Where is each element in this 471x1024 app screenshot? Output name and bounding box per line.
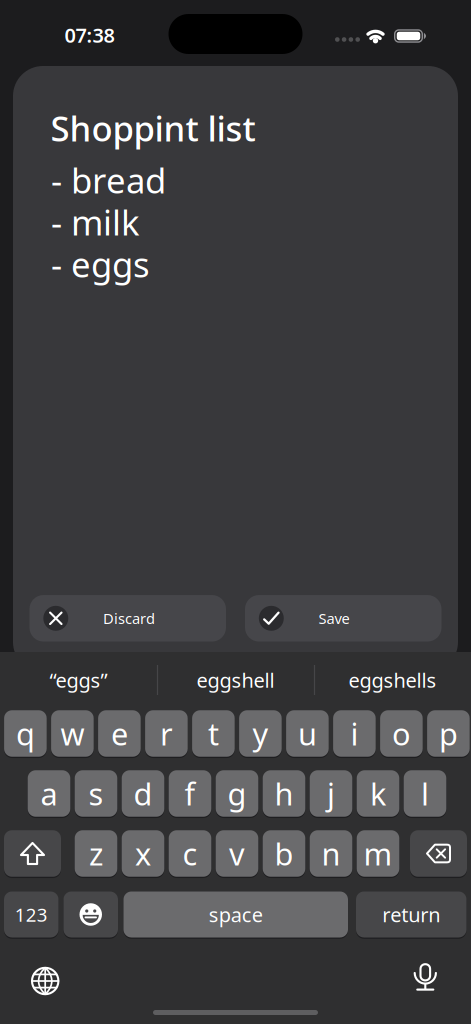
button[interactable]: u <box>286 710 329 757</box>
button[interactable]: return <box>356 891 466 937</box>
button[interactable]: i <box>333 710 376 757</box>
staticText: e <box>111 713 128 754</box>
staticText: b <box>274 833 293 874</box>
button[interactable]: g <box>216 770 258 817</box>
button[interactable]: w <box>51 710 94 757</box>
staticText: k <box>370 773 386 814</box>
button[interactable]: h <box>263 770 305 817</box>
staticText: m <box>363 833 392 874</box>
staticText: d <box>133 773 152 814</box>
staticText: c <box>182 833 197 874</box>
staticText: Shoppint list <box>50 105 255 151</box>
button[interactable]: Discard <box>29 595 226 641</box>
staticText: Save <box>318 609 349 628</box>
button[interactable]: q <box>4 710 47 757</box>
button[interactable]: v <box>216 830 258 877</box>
button[interactable]: eggshells <box>317 660 467 700</box>
button[interactable]: k <box>357 770 399 817</box>
staticText: n <box>321 833 340 874</box>
button[interactable]: space <box>123 891 348 937</box>
staticText: j <box>327 773 335 814</box>
button[interactable]: r <box>145 710 188 757</box>
button[interactable]: “eggs” <box>3 660 153 700</box>
staticText: r <box>160 713 173 754</box>
staticText: l <box>421 773 429 814</box>
staticText: s <box>88 773 103 814</box>
button[interactable]: Shift <box>4 830 61 877</box>
staticText: h <box>274 773 293 814</box>
staticText: z <box>89 833 103 874</box>
staticText: y <box>252 713 268 754</box>
button[interactable]: n <box>310 830 352 877</box>
button[interactable]: o <box>380 710 423 757</box>
staticText: space <box>209 901 263 928</box>
button[interactable]: Delete <box>410 830 467 877</box>
staticText: u <box>298 713 317 754</box>
staticText: w <box>60 713 84 754</box>
button[interactable]: b <box>263 830 305 877</box>
staticText: 07:38 <box>64 22 114 48</box>
button[interactable]: Save <box>245 595 441 641</box>
staticText: p <box>439 713 458 754</box>
button[interactable]: Emoji <box>63 891 118 937</box>
button[interactable]: f <box>169 770 211 817</box>
staticText: “eggs” <box>49 667 107 693</box>
staticText: v <box>229 833 245 874</box>
staticText: eggshell <box>196 667 274 693</box>
staticText: q <box>16 713 35 754</box>
button[interactable]: d <box>122 770 164 817</box>
button[interactable]: l <box>404 770 446 817</box>
button[interactable]: eggshell <box>160 660 310 700</box>
button[interactable]: y <box>239 710 282 757</box>
staticText: eggshells <box>348 667 436 693</box>
staticText: - bread <box>51 157 166 203</box>
staticText: return <box>382 901 440 928</box>
staticText: a <box>40 773 57 814</box>
button[interactable]: m <box>357 830 399 877</box>
button[interactable]: a <box>28 770 70 817</box>
button[interactable]: z <box>75 830 117 877</box>
staticText: - eggs <box>51 241 150 287</box>
staticText: f <box>184 773 195 814</box>
button[interactable]: Next keyboard <box>20 956 70 1006</box>
button[interactable]: s <box>75 770 117 817</box>
button[interactable]: t <box>192 710 235 757</box>
button[interactable]: Numbers <box>4 891 58 937</box>
button[interactable]: Dictation <box>400 954 450 1004</box>
staticText: - milk <box>51 199 140 245</box>
staticText: i <box>350 713 358 754</box>
button[interactable]: e <box>98 710 141 757</box>
staticText: t <box>208 713 219 754</box>
staticText: x <box>135 833 151 874</box>
staticText: 123 <box>15 902 48 927</box>
button[interactable]: j <box>310 770 352 817</box>
button[interactable]: x <box>122 830 164 877</box>
staticText: o <box>392 713 411 754</box>
staticText: Discard <box>103 609 155 628</box>
staticText: g <box>227 773 246 814</box>
button[interactable]: p <box>427 710 470 757</box>
button[interactable]: c <box>169 830 211 877</box>
